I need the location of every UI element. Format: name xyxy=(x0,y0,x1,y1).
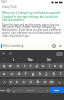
staticText: Today 10:24 xyxy=(2,5,17,9)
staticText: b xyxy=(37,80,39,84)
button[interactable]: . xyxy=(44,87,50,93)
staticText: k xyxy=(53,72,55,76)
button[interactable]: y xyxy=(34,63,40,69)
staticText: Write something xyxy=(3,44,24,48)
button[interactable]: Send xyxy=(57,43,63,49)
staticText: s xyxy=(11,72,13,76)
staticText: j xyxy=(46,72,47,76)
staticText: The xyxy=(28,58,33,62)
button[interactable]: c xyxy=(20,79,27,85)
button[interactable]: j xyxy=(43,71,50,77)
button[interactable]: I xyxy=(12,58,15,62)
button[interactable]: i xyxy=(46,63,52,69)
staticText: , xyxy=(14,88,15,92)
staticText: m xyxy=(50,80,53,84)
staticText: e xyxy=(17,64,19,68)
staticText: I'm xyxy=(47,58,51,62)
staticText: p xyxy=(60,64,62,68)
button[interactable]: h xyxy=(36,71,43,77)
staticText: u xyxy=(42,64,44,68)
button[interactable]: I'm xyxy=(46,58,52,62)
button[interactable]: a xyxy=(0,71,8,77)
button[interactable]: Clipboard xyxy=(56,52,63,56)
staticText: z xyxy=(10,80,12,84)
button[interactable]: f xyxy=(22,71,29,77)
staticText: i xyxy=(49,64,50,68)
staticText: ?123 xyxy=(0,89,5,92)
button[interactable]: p xyxy=(58,63,64,69)
staticText: c xyxy=(23,80,25,84)
staticText: 9:41 xyxy=(1,0,7,4)
staticText: . xyxy=(47,88,48,92)
button[interactable]: d xyxy=(15,71,22,77)
button[interactable]: r xyxy=(21,63,28,69)
button[interactable]: e xyxy=(14,63,21,69)
staticText: English xyxy=(27,89,35,92)
button[interactable]: Attach xyxy=(51,43,57,49)
button[interactable]: Send xyxy=(50,87,64,93)
staticText: d xyxy=(18,72,20,76)
staticText: o xyxy=(54,64,56,68)
button[interactable]: Previous xyxy=(1,51,6,56)
button[interactable]: n xyxy=(41,79,48,85)
button[interactable]: , xyxy=(11,87,17,93)
staticText: x xyxy=(16,80,18,84)
staticText: h xyxy=(39,72,41,76)
button[interactable]: Shift xyxy=(0,79,8,85)
staticText: r xyxy=(24,64,26,68)
button[interactable]: k xyxy=(50,71,57,77)
staticText: n xyxy=(44,80,46,84)
button[interactable]: Next xyxy=(8,51,13,56)
staticText: q xyxy=(3,64,5,68)
staticText: Where do I change my notification sounds… xyxy=(2,11,62,21)
staticText: Open the app and tap the menu icon in th… xyxy=(2,23,62,38)
button[interactable]: English xyxy=(17,87,44,93)
staticText: I xyxy=(13,58,14,62)
button[interactable]: o xyxy=(52,63,58,69)
staticText: w xyxy=(9,64,12,68)
staticText: y xyxy=(36,64,38,68)
button[interactable]: t xyxy=(28,63,34,69)
button[interactable]: z xyxy=(8,79,14,85)
staticText: v xyxy=(30,80,32,84)
staticText: l xyxy=(60,72,61,76)
button[interactable]: Emoji xyxy=(5,87,11,93)
button[interactable]: m xyxy=(48,79,55,85)
button[interactable]: s xyxy=(8,71,15,77)
button[interactable]: v xyxy=(27,79,34,85)
button[interactable]: b xyxy=(34,79,41,85)
staticText: t xyxy=(30,64,32,68)
button[interactable]: l xyxy=(57,71,64,77)
button[interactable]: u xyxy=(40,63,46,69)
staticText: a xyxy=(3,72,5,76)
button[interactable]: g xyxy=(29,71,36,77)
button[interactable]: ?123 xyxy=(0,87,5,93)
staticText: f xyxy=(25,72,27,76)
button[interactable]: Backspace xyxy=(55,79,64,85)
staticText: Send xyxy=(54,89,60,92)
staticText: g xyxy=(32,72,34,76)
button[interactable]: q xyxy=(0,63,7,69)
button[interactable]: x xyxy=(14,79,20,85)
button[interactable]: w xyxy=(7,63,14,69)
button[interactable]: The xyxy=(27,58,34,62)
